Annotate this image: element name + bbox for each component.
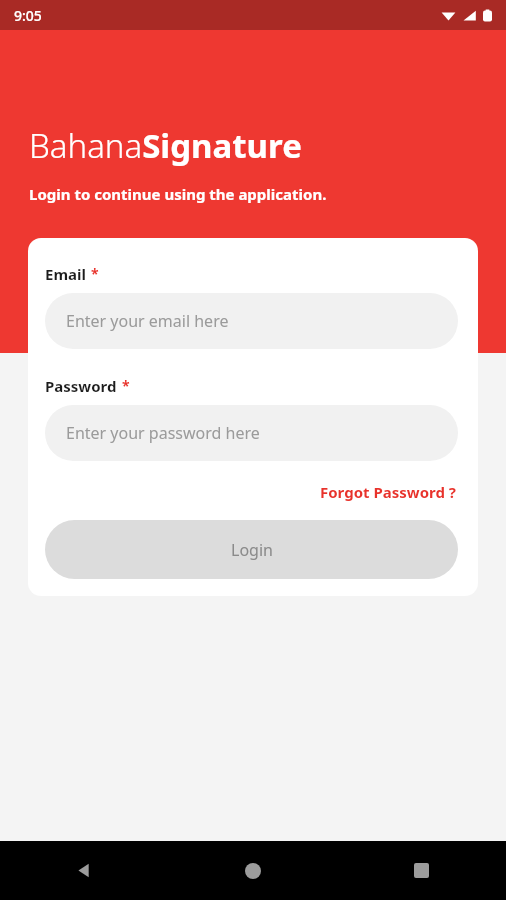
staticText: Enter your password here — [66, 422, 260, 444]
staticText: BahanaSignature — [29, 123, 302, 168]
staticText: Password — [45, 376, 117, 396]
button[interactable]: Enter your email here — [45, 293, 458, 349]
staticText: 9:05 — [14, 6, 42, 25]
button[interactable]: Home — [168, 841, 337, 900]
staticText: Email — [45, 264, 86, 284]
button[interactable]: Enter your password here — [45, 405, 458, 461]
staticText: Login — [231, 539, 273, 561]
staticText: Login to continue using the application. — [29, 184, 327, 204]
button[interactable]: Login — [45, 520, 458, 579]
staticText: * — [122, 376, 130, 395]
staticText: Enter your email here — [66, 310, 229, 332]
button[interactable]: Back — [0, 841, 168, 900]
staticText: * — [91, 264, 99, 283]
button[interactable]: Forgot Password ? — [318, 480, 458, 504]
button[interactable]: Recent apps — [337, 841, 506, 900]
